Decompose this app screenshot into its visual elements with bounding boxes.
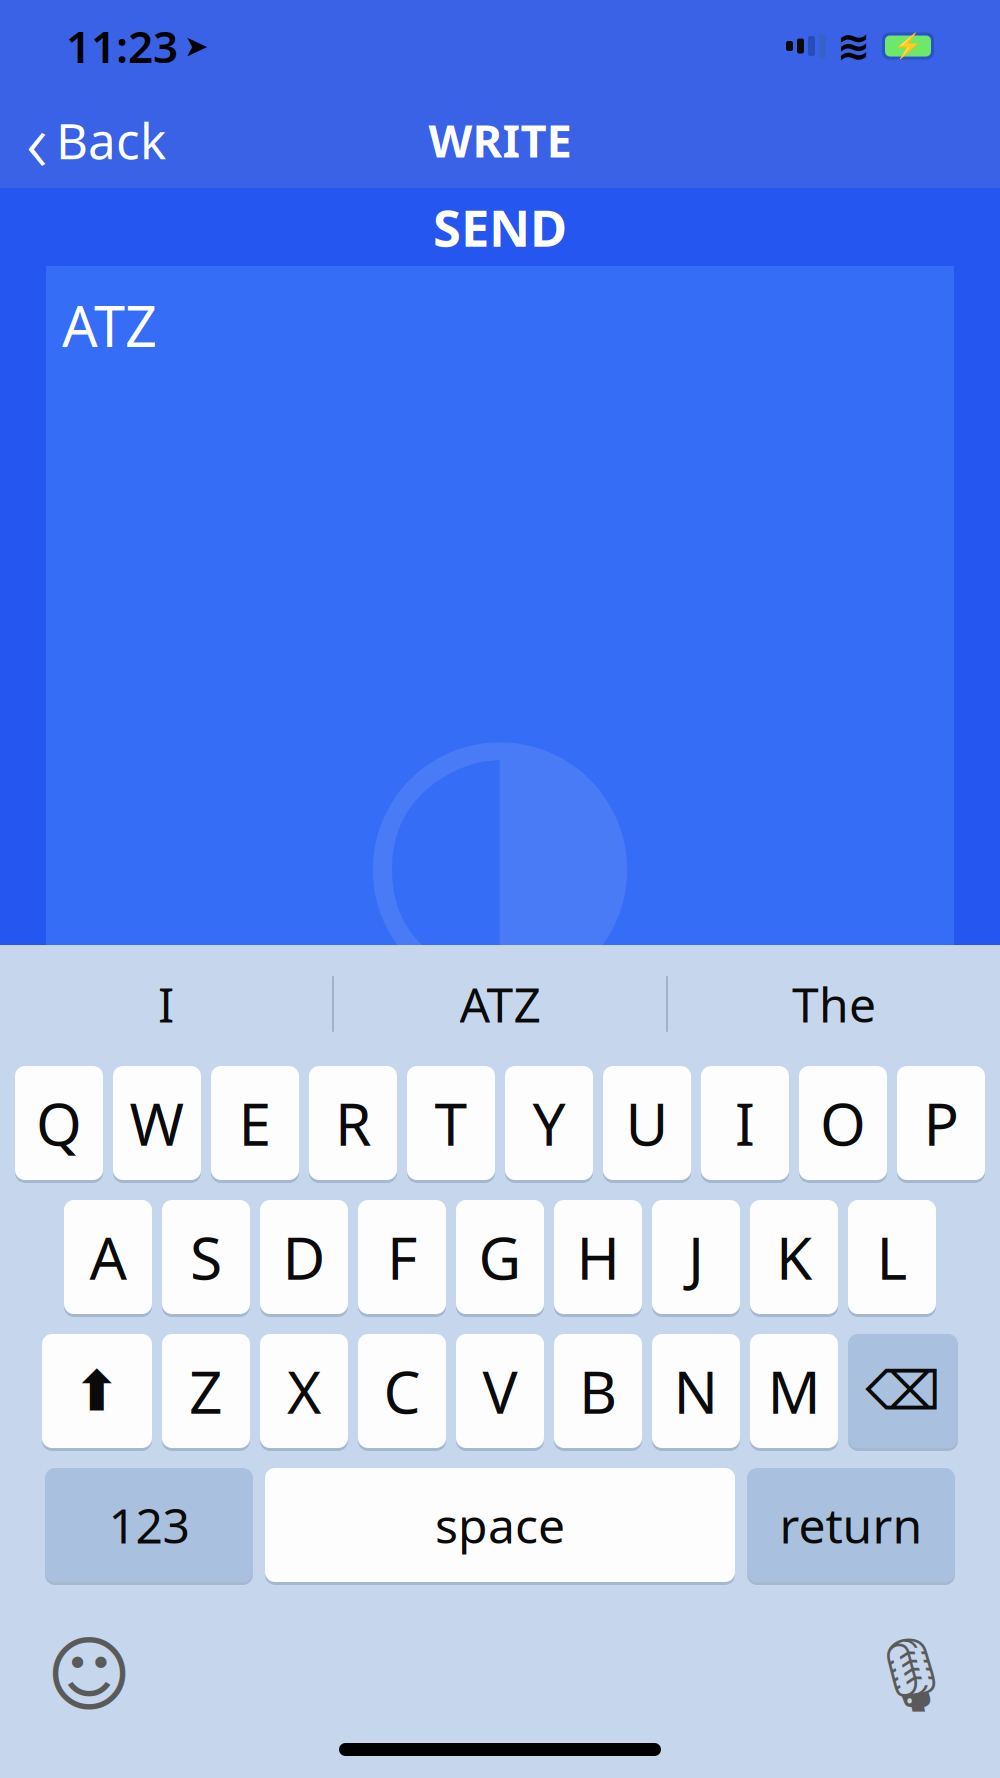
button[interactable]: B [554, 1331, 642, 1451]
button[interactable]: The [668, 960, 1000, 1048]
staticText: Z [189, 1352, 223, 1430]
button[interactable]: W [113, 1063, 201, 1183]
staticText: SEND [433, 193, 567, 261]
button[interactable]: Delete [848, 1331, 958, 1451]
staticText: ≋ [837, 23, 871, 69]
staticText: A [89, 1218, 126, 1296]
button[interactable]: M [750, 1331, 838, 1451]
button[interactable]: Dictate [856, 1625, 966, 1725]
button[interactable]: ‹ [0, 96, 192, 184]
staticText: V [482, 1352, 517, 1430]
staticText: 11:23 [66, 17, 178, 75]
staticText: 123 [108, 1493, 189, 1557]
staticText: G [478, 1218, 521, 1296]
button[interactable]: L [848, 1197, 936, 1317]
staticText: K [776, 1218, 812, 1296]
staticText: J [688, 1218, 704, 1296]
staticText: F [387, 1218, 417, 1296]
button[interactable]: V [456, 1331, 544, 1451]
button[interactable]: S [162, 1197, 250, 1317]
staticText: S [190, 1218, 222, 1296]
staticText: ⌫ [865, 1361, 940, 1421]
staticText: U [625, 1084, 668, 1162]
staticText: The [792, 972, 876, 1036]
button[interactable]: Z [162, 1331, 250, 1451]
staticText: I [735, 1084, 755, 1162]
staticText: Y [532, 1084, 565, 1162]
staticText: E [238, 1084, 271, 1162]
staticText: ATZ [459, 972, 540, 1036]
button[interactable]: ATZ [334, 960, 666, 1048]
button[interactable]: Emoji [34, 1625, 144, 1725]
staticText: Back [56, 107, 166, 173]
button[interactable]: I [0, 960, 332, 1048]
button[interactable]: I [701, 1063, 789, 1183]
button[interactable]: space [265, 1465, 735, 1585]
staticText: Q [36, 1084, 82, 1162]
staticText: ⚡ [893, 32, 923, 60]
staticText: ◑ [354, 651, 645, 1030]
staticText: H [576, 1218, 619, 1296]
staticText: ➤ [184, 29, 209, 63]
staticText: ☺ [46, 1628, 132, 1722]
button[interactable]: O [799, 1063, 887, 1183]
button[interactable]: Q [15, 1063, 103, 1183]
staticText: I [158, 972, 174, 1036]
staticText: return [779, 1493, 922, 1557]
staticText: C [383, 1352, 420, 1430]
button[interactable]: K [750, 1197, 838, 1317]
button[interactable]: D [260, 1197, 348, 1317]
button[interactable]: Y [505, 1063, 593, 1183]
button[interactable]: return [747, 1465, 955, 1585]
staticText: O [820, 1084, 866, 1162]
button[interactable]: U [603, 1063, 691, 1183]
button[interactable]: R [309, 1063, 397, 1183]
button[interactable]: G [456, 1197, 544, 1317]
button[interactable]: F [358, 1197, 446, 1317]
staticText: M [767, 1352, 820, 1430]
button[interactable]: J [652, 1197, 740, 1317]
staticText: W [129, 1084, 184, 1162]
button[interactable]: E [211, 1063, 299, 1183]
staticText: R [335, 1084, 371, 1162]
button[interactable]: 123 [45, 1465, 253, 1585]
staticText: space [435, 1493, 565, 1557]
staticText: T [434, 1084, 467, 1162]
staticText: ATZ [62, 288, 157, 362]
button[interactable]: SEND [0, 188, 1000, 266]
staticText: WRITE [428, 110, 571, 170]
staticText: L [876, 1218, 907, 1296]
button[interactable]: N [652, 1331, 740, 1451]
button[interactable]: X [260, 1331, 348, 1451]
button[interactable]: T [407, 1063, 495, 1183]
button[interactable]: H [554, 1197, 642, 1317]
staticText: D [282, 1218, 325, 1296]
staticText: ⬆ [73, 1359, 120, 1423]
button[interactable]: C [358, 1331, 446, 1451]
button[interactable]: A [64, 1197, 152, 1317]
staticText: ‹ [26, 85, 48, 195]
button[interactable]: Shift [42, 1331, 152, 1451]
staticText: P [923, 1084, 958, 1162]
staticText: N [673, 1352, 718, 1430]
staticText: X [287, 1352, 321, 1430]
staticText: 🎙 [865, 1634, 956, 1716]
staticText: B [579, 1352, 617, 1430]
button[interactable]: P [897, 1063, 985, 1183]
